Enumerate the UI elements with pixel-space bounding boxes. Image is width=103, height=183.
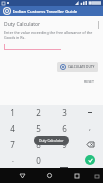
staticText: 8 — [36, 139, 41, 150]
button[interactable]: 8 — [25, 136, 51, 152]
staticText: 0 — [36, 155, 41, 166]
staticText: RESET — [84, 79, 95, 84]
button[interactable]: 2 — [25, 105, 51, 120]
staticText: 7 — [10, 139, 15, 150]
staticText: Duty Calculator — [4, 21, 41, 28]
staticText: 1 — [10, 107, 15, 118]
button[interactable]: Back — [18, 171, 27, 180]
button[interactable]: Space — [51, 152, 77, 168]
button[interactable]: 7 — [0, 136, 25, 152]
button[interactable]: Recents — [72, 171, 81, 180]
staticText: Enter the value exceeding the free allow… — [4, 30, 94, 40]
button[interactable]: App icon — [3, 7, 11, 15]
staticText: Indian Customs Traveller Guide — [13, 8, 78, 14]
staticText: Duty Calculator — [39, 138, 64, 143]
button[interactable]: 4 — [0, 120, 25, 136]
button[interactable]: Enter — [77, 152, 103, 168]
button[interactable]: Switch keyboard — [93, 172, 101, 180]
button[interactable]: 1 — [0, 105, 25, 120]
staticText: 5 — [36, 123, 41, 134]
button[interactable]: Home — [45, 171, 54, 180]
staticText: 2 — [36, 107, 41, 118]
staticText: . — [12, 155, 14, 165]
staticText: 9 — [62, 139, 67, 150]
staticText: 4 — [10, 123, 15, 134]
button[interactable]: 6 — [51, 120, 77, 136]
button[interactable]: 3 — [51, 105, 77, 120]
staticText: CALCULATE DUTY — [68, 65, 95, 69]
button[interactable]: Duty Calculator — [34, 136, 69, 145]
button[interactable]: Comma — [77, 120, 103, 136]
button[interactable]: 0 — [25, 152, 51, 168]
staticText: , — [89, 123, 91, 133]
staticText: 6 — [62, 123, 67, 134]
button[interactable]: Period — [0, 152, 25, 168]
button[interactable]: Delete — [77, 136, 103, 152]
staticText: 3 — [62, 107, 67, 118]
button[interactable]: 5 — [25, 120, 51, 136]
button[interactable]: 9 — [51, 136, 77, 152]
button[interactable]: RESET — [82, 78, 97, 85]
button[interactable]: Minus — [77, 105, 103, 120]
button[interactable]: CALCULATE DUTY — [57, 62, 98, 72]
